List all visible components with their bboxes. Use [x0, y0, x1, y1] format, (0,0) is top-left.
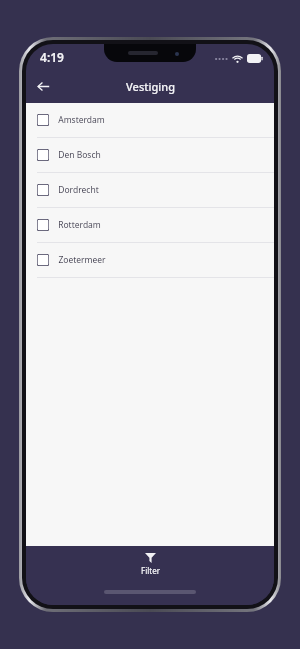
- staticText: Vestiging: [126, 79, 175, 94]
- button[interactable]: Dordrecht: [26, 173, 274, 207]
- button[interactable]: Zoetermeer: [26, 243, 274, 277]
- staticText: Den Bosch: [58, 149, 101, 161]
- staticText: Rotterdam: [58, 219, 101, 231]
- staticText: Zoetermeer: [58, 254, 106, 266]
- button[interactable]: Den Bosch: [26, 138, 274, 172]
- button[interactable]: Back: [26, 70, 60, 103]
- staticText: Filter: [141, 565, 160, 576]
- button[interactable]: Rotterdam: [26, 208, 274, 242]
- staticText: 4:19: [40, 49, 64, 65]
- button[interactable]: Filter: [26, 546, 274, 587]
- button[interactable]: Amsterdam: [26, 103, 274, 137]
- staticText: Dordrecht: [58, 184, 99, 196]
- staticText: Amsterdam: [58, 114, 105, 126]
